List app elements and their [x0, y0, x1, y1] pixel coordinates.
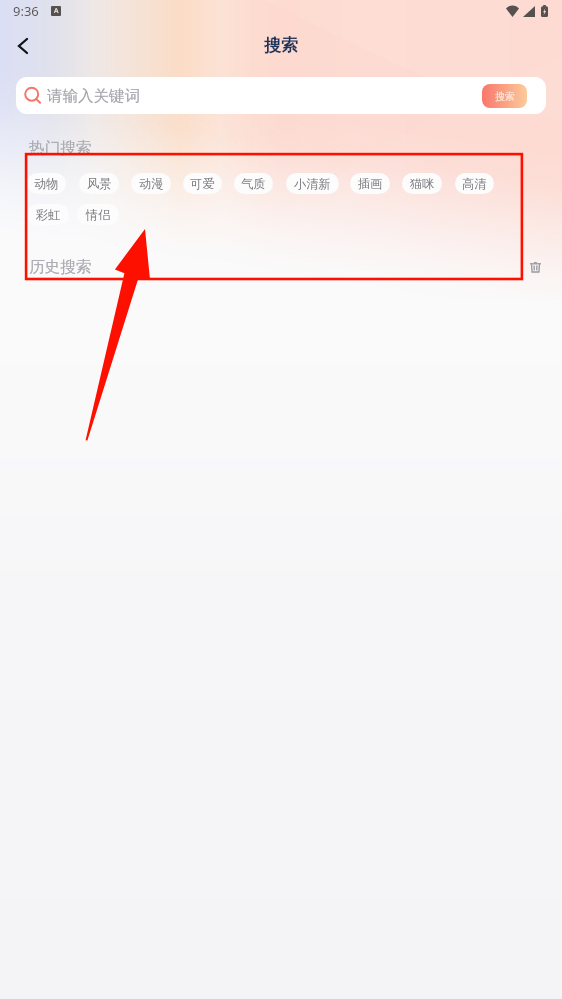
- staticText: 动漫: [139, 176, 164, 191]
- staticText: 请输入关键词: [47, 86, 140, 106]
- button[interactable]: 可爱: [183, 173, 222, 194]
- staticText: 风景: [87, 176, 112, 191]
- staticText: 搜索: [264, 35, 298, 56]
- staticText: 动物: [34, 176, 59, 191]
- button[interactable]: Clear search history: [524, 256, 546, 278]
- staticText: 气质: [241, 176, 266, 191]
- button[interactable]: 情侣: [77, 204, 119, 225]
- button[interactable]: 猫咪: [402, 173, 442, 194]
- button[interactable]: 小清新: [286, 173, 339, 194]
- staticText: 9:36: [13, 2, 39, 20]
- staticText: 小清新: [294, 176, 331, 191]
- button[interactable]: 插画: [350, 173, 390, 194]
- staticText: A: [54, 6, 59, 16]
- button[interactable]: 高清: [455, 173, 494, 194]
- button[interactable]: 搜索: [482, 84, 527, 108]
- button[interactable]: 气质: [234, 173, 273, 194]
- button[interactable]: Back: [0, 28, 38, 63]
- staticText: 插画: [358, 176, 383, 191]
- staticText: 彩虹: [36, 207, 61, 222]
- staticText: 可爱: [190, 176, 215, 191]
- button[interactable]: 动物: [27, 173, 66, 194]
- button[interactable]: 动漫: [131, 173, 171, 194]
- staticText: 历史搜索: [29, 257, 92, 277]
- staticText: 猫咪: [410, 176, 435, 191]
- staticText: 高清: [462, 176, 487, 191]
- button[interactable]: 彩虹: [27, 204, 69, 225]
- staticText: 情侣: [86, 207, 111, 222]
- staticText: 热门搜索: [29, 138, 92, 158]
- staticText: 搜索: [495, 90, 515, 103]
- button[interactable]: 风景: [79, 173, 119, 194]
